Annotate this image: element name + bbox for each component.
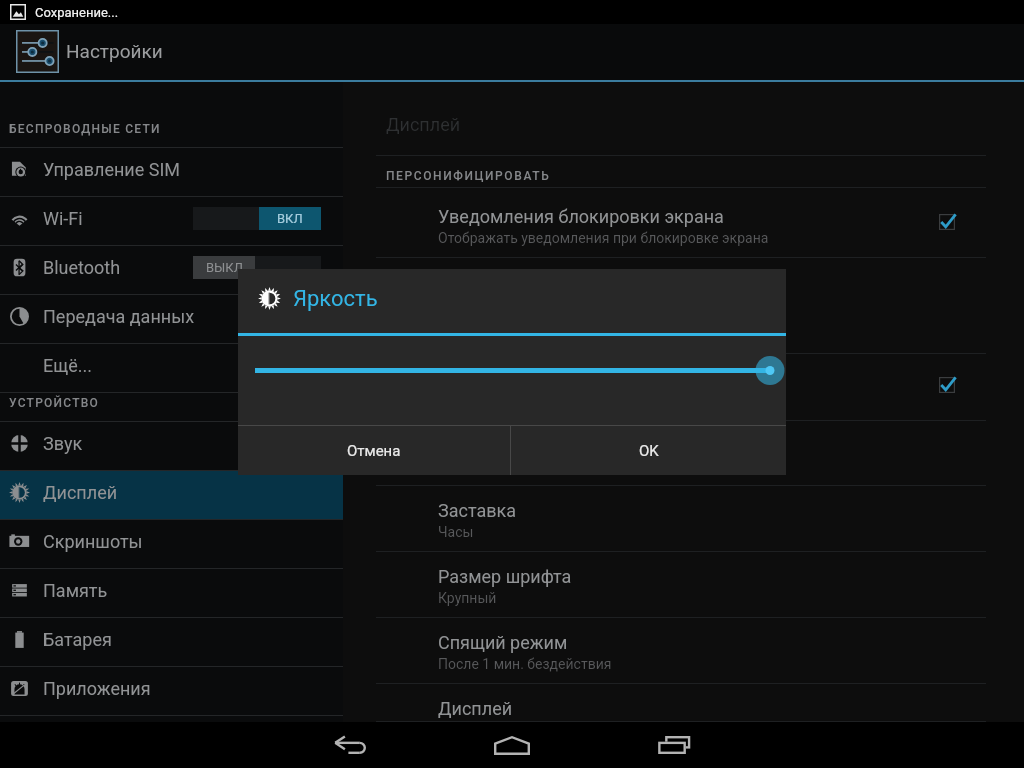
button[interactable]	[238, 336, 786, 425]
staticText: Спящий режим	[438, 632, 568, 653]
button[interactable]: Уведомления блокировки экрана	[343, 188, 1024, 258]
button[interactable]: OK	[511, 426, 786, 475]
button[interactable]: Дисплей	[0, 471, 343, 520]
staticText: Часы	[438, 524, 474, 540]
button[interactable]: Bluetooth	[0, 246, 343, 295]
staticText: Память	[43, 580, 108, 601]
staticText: Приложения	[43, 678, 151, 699]
staticText: Дисплей	[438, 698, 513, 719]
staticText: БЕСПРОВОДНЫЕ СЕТИ	[9, 122, 161, 136]
staticText: Передача данных	[43, 306, 195, 327]
button[interactable]: Home	[467, 722, 557, 768]
button[interactable]: Передача данных	[0, 295, 343, 344]
button[interactable]: Память	[0, 569, 343, 618]
button[interactable]: Спящий режим	[343, 618, 1024, 684]
staticText: Сохранение...	[35, 5, 119, 20]
button[interactable]: Обои	[343, 258, 1024, 354]
button[interactable]: ВКЛ	[193, 207, 321, 230]
staticText: Скриншоты	[43, 531, 143, 552]
staticText: Bluetooth	[43, 257, 121, 278]
staticText: Управление SIM	[43, 159, 181, 180]
button[interactable]: Back	[305, 722, 395, 768]
button[interactable]: Управление SIM	[0, 148, 343, 197]
button[interactable]: Автоповорот экрана	[343, 354, 1024, 421]
staticText: Дисплей	[386, 114, 461, 135]
staticText: Яркость	[293, 286, 378, 312]
staticText: Крупный	[438, 590, 497, 606]
staticText: Ещё...	[43, 355, 93, 376]
staticText: Уведомления блокировки экрана	[438, 206, 724, 227]
staticText: Заставка	[438, 500, 517, 521]
staticText: Автоповорот экрана	[438, 369, 613, 390]
button[interactable]: Отмена	[238, 426, 510, 475]
staticText: Размер шрифта	[438, 566, 572, 587]
staticText: Отмена	[347, 442, 401, 460]
staticText: После 1 мин. бездействия	[438, 656, 612, 672]
button[interactable]: Wi-Fi	[0, 197, 343, 246]
button[interactable]: Заставка	[343, 486, 1024, 552]
staticText: Звук	[43, 433, 83, 454]
button[interactable]: Яркость	[343, 421, 1024, 486]
staticText: ПЕРСОНИФИЦИРОВАТЬ	[386, 169, 551, 183]
button[interactable]: Приложения	[0, 667, 343, 716]
button[interactable]: Размер шрифта	[343, 552, 1024, 618]
button[interactable]: ВЫКЛ	[193, 256, 321, 279]
button[interactable]: Ещё...	[0, 344, 343, 393]
staticText: ВЫКЛ	[206, 260, 243, 275]
staticText: OK	[639, 442, 659, 460]
staticText: ВКЛ	[277, 211, 303, 226]
button[interactable]: Скриншоты	[0, 520, 343, 569]
staticText: Настройки	[66, 40, 163, 62]
staticText: Батарея	[43, 629, 112, 650]
staticText: Отображать уведомления при блокировке эк…	[438, 230, 769, 246]
button[interactable]: Звук	[0, 422, 343, 471]
button[interactable]: Батарея	[0, 618, 343, 667]
staticText: Wi-Fi	[43, 208, 83, 229]
staticText: УСТРОЙСТВО	[9, 396, 100, 410]
button[interactable]: Дисплей	[343, 684, 1024, 722]
staticText: Дисплей	[43, 482, 118, 503]
button[interactable]: Recent apps	[630, 722, 720, 768]
